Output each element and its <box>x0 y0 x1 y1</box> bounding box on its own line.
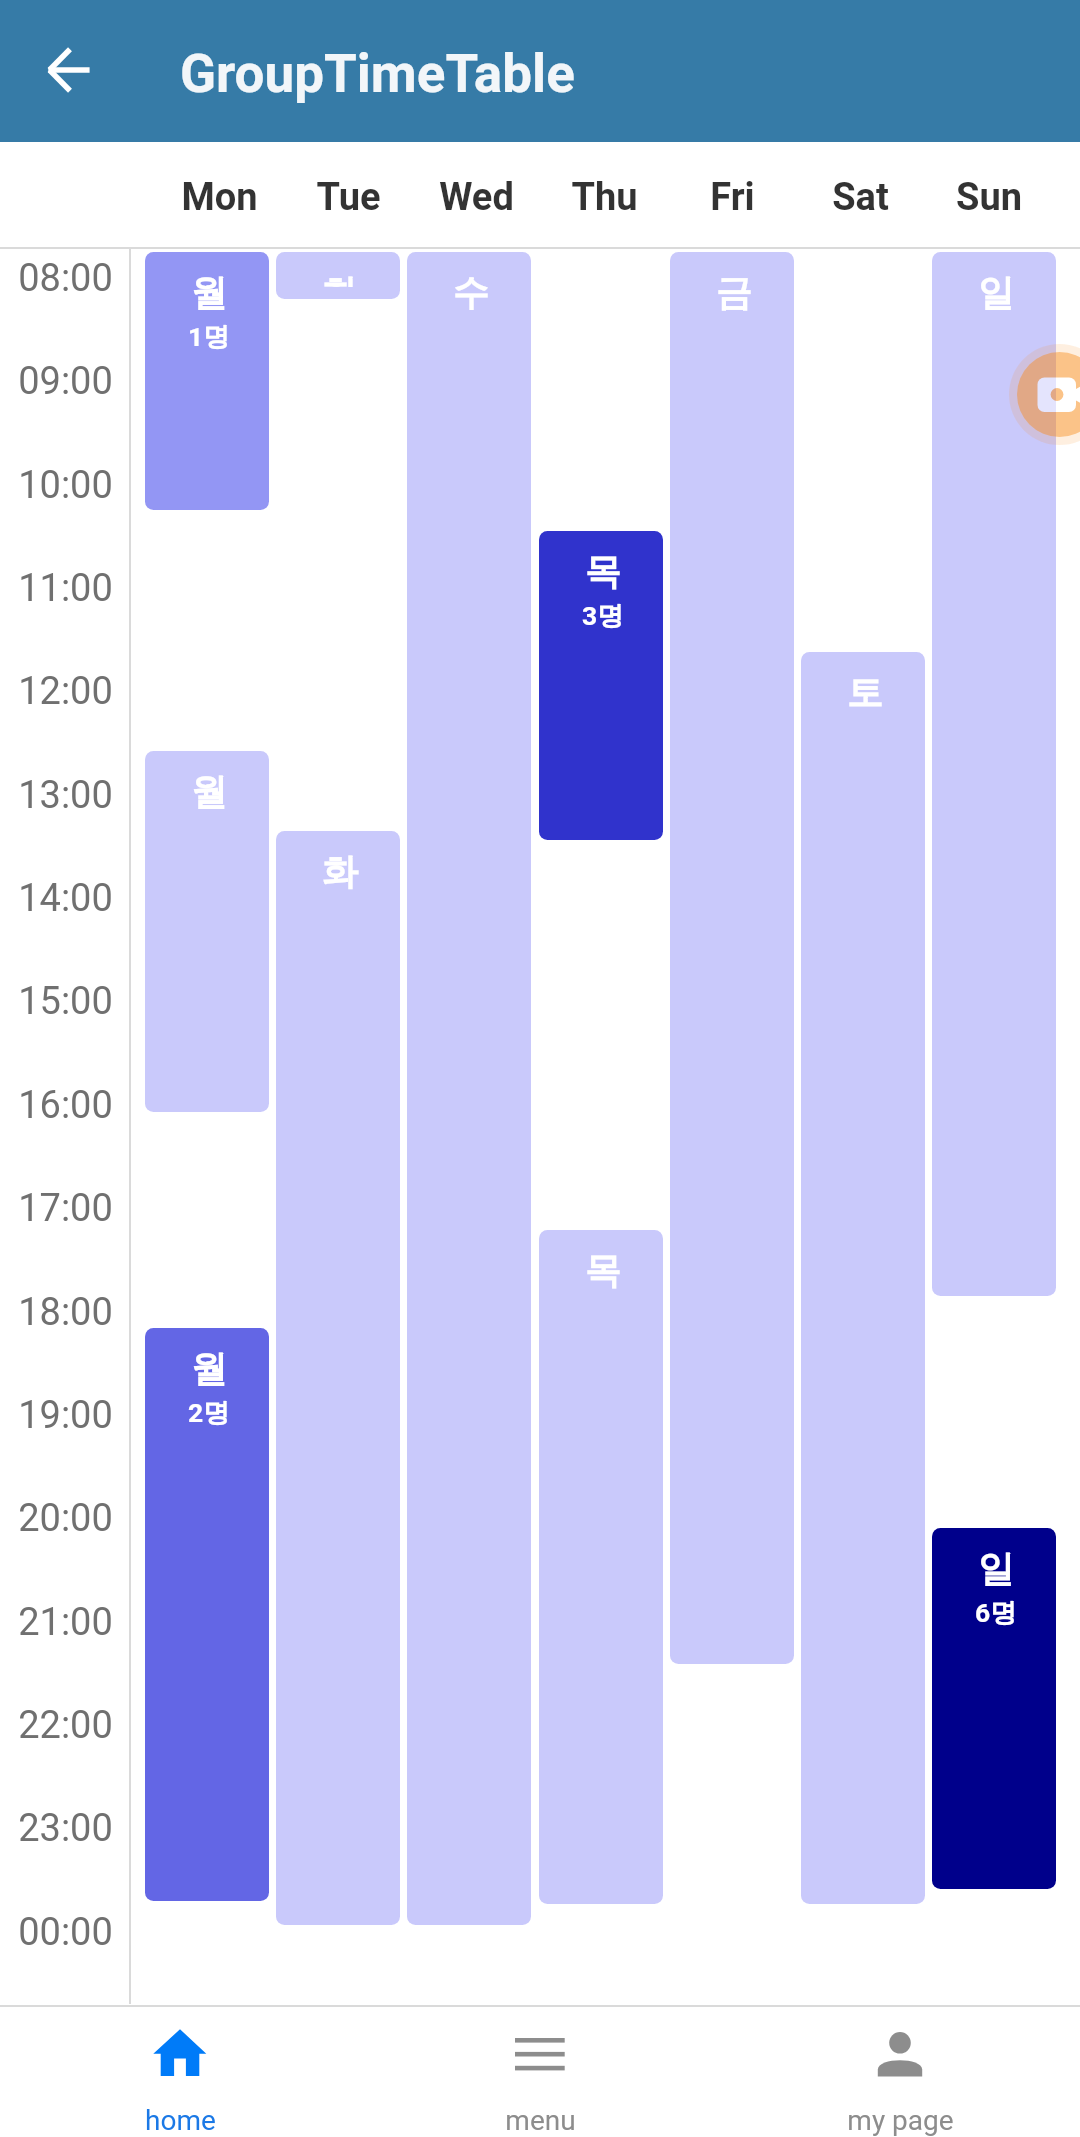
staticText: 수 <box>453 270 489 315</box>
button[interactable]: 일 <box>932 252 1056 1296</box>
staticText: Sun <box>956 175 1022 220</box>
staticText: 월 <box>191 1346 227 1391</box>
staticText: 23:00 <box>18 1806 113 1851</box>
staticText: 14:00 <box>18 876 113 921</box>
button[interactable]: 일 <box>932 1528 1056 1889</box>
staticText: 13:00 <box>18 773 113 818</box>
staticText: 08:00 <box>18 256 113 301</box>
staticText: 09:00 <box>18 359 113 404</box>
button[interactable]: 화 <box>276 252 400 299</box>
staticText: 00:00 <box>18 1910 113 1955</box>
staticText: 목 <box>585 1248 621 1293</box>
staticText: 19:00 <box>18 1393 113 1438</box>
staticText: 22:00 <box>18 1703 113 1748</box>
staticText: Sat <box>832 175 889 220</box>
button[interactable]: 월 <box>145 751 269 1112</box>
staticText: Fri <box>710 175 755 220</box>
button[interactable]: home <box>0 2005 360 2137</box>
staticText: 3명 <box>582 599 624 632</box>
staticText: 월 <box>191 270 227 315</box>
staticText: 21:00 <box>18 1600 113 1645</box>
staticText: 월 <box>191 769 227 814</box>
staticText: Mon <box>181 175 258 220</box>
button[interactable]: 목 <box>539 531 663 840</box>
staticText: 화 <box>322 270 358 287</box>
button[interactable]: 토 <box>801 652 925 1904</box>
button[interactable]: menu <box>360 2005 720 2137</box>
staticText: Thu <box>571 175 638 220</box>
button[interactable]: 월 <box>145 252 269 510</box>
staticText: 18:00 <box>18 1290 113 1335</box>
staticText: 16:00 <box>18 1083 113 1128</box>
staticText: my page <box>847 2104 954 2137</box>
button[interactable]: 월 <box>145 1328 269 1901</box>
staticText: 목 <box>585 549 621 594</box>
staticText: 일 <box>978 270 1014 315</box>
staticText: Wed <box>439 175 514 220</box>
staticText: 금 <box>716 270 752 315</box>
staticText: menu <box>505 2104 576 2137</box>
staticText: 일 <box>978 1546 1014 1591</box>
button[interactable]: 목 <box>539 1230 663 1904</box>
staticText: 1명 <box>188 320 230 353</box>
staticText: 11:00 <box>18 566 113 611</box>
button[interactable]: 화 <box>276 831 400 1925</box>
button[interactable]: Start video call <box>1009 344 1080 445</box>
staticText: 10:00 <box>18 463 113 508</box>
staticText: 15:00 <box>18 979 113 1024</box>
staticText: 화 <box>322 849 358 894</box>
staticText: 12:00 <box>18 669 113 714</box>
button[interactable]: Back <box>30 28 114 112</box>
staticText: 20:00 <box>18 1496 113 1541</box>
button[interactable]: my page <box>720 2005 1080 2137</box>
staticText: home <box>145 2104 216 2137</box>
staticText: 17:00 <box>18 1186 113 1231</box>
staticText: 토 <box>847 670 883 715</box>
button[interactable]: 금 <box>670 252 794 1664</box>
staticText: 6명 <box>975 1596 1017 1629</box>
staticText: 2명 <box>188 1396 230 1429</box>
staticText: Tue <box>316 175 381 220</box>
staticText: GroupTimeTable <box>180 43 575 105</box>
